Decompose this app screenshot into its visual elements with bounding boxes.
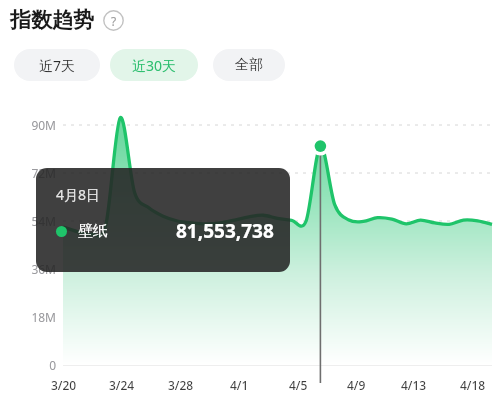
staticText: 3/20	[51, 377, 77, 393]
staticText: 壁纸	[78, 222, 108, 241]
staticText: 72M	[31, 165, 56, 181]
button[interactable]: 4月8日	[36, 168, 290, 272]
staticText: 4/18	[460, 377, 486, 393]
staticText: 3/24	[109, 377, 135, 393]
staticText: 90M	[31, 117, 56, 133]
button[interactable]: 近7天	[14, 49, 100, 81]
staticText: 4/5	[289, 377, 308, 393]
staticText: 4月8日	[56, 185, 101, 204]
staticText: 4/9	[347, 377, 366, 393]
staticText: 近7天	[39, 56, 76, 75]
button[interactable]: 帮助	[103, 10, 124, 31]
staticText: 0	[49, 357, 56, 373]
button[interactable]: 近30天	[110, 49, 198, 81]
staticText: 全部	[235, 56, 263, 74]
staticText: 3/28	[168, 377, 194, 393]
staticText: 18M	[31, 309, 56, 325]
staticText: 近30天	[132, 56, 177, 75]
staticText: 54M	[31, 213, 56, 229]
button[interactable]: 全部	[213, 49, 285, 81]
staticText: 81,553,738	[176, 218, 274, 244]
staticText: 指数趋势	[10, 7, 94, 33]
staticText: ?	[111, 13, 117, 29]
staticText: 4/1	[230, 377, 249, 393]
staticText: 4/13	[401, 377, 427, 393]
staticText: 36M	[31, 261, 56, 277]
